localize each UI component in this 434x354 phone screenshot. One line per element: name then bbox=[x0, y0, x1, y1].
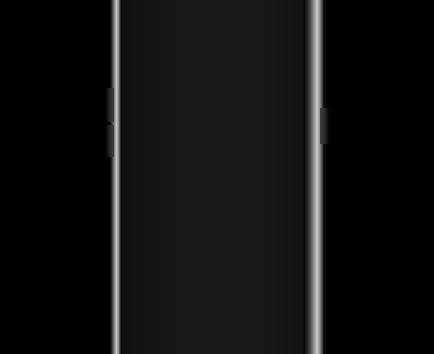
button[interactable]: Phone device, screen off bbox=[0, 0, 434, 354]
